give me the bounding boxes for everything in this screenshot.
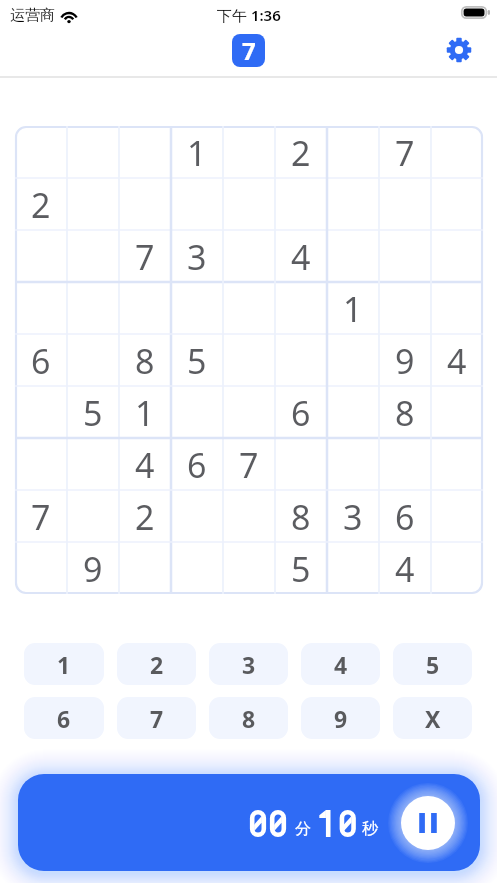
button[interactable] [15, 386, 67, 438]
button[interactable]: Settings [442, 33, 476, 67]
button[interactable]: 8 [275, 490, 327, 542]
button[interactable]: 3 [209, 643, 288, 685]
button[interactable]: 7 [223, 438, 275, 490]
button[interactable]: 5 [393, 643, 472, 685]
button[interactable] [327, 542, 379, 594]
button[interactable]: 5 [67, 386, 119, 438]
button[interactable] [275, 438, 327, 490]
button[interactable]: 8 [209, 697, 288, 739]
staticText: 1 [135, 390, 155, 436]
button[interactable] [223, 230, 275, 282]
button[interactable] [67, 334, 119, 386]
button[interactable]: 9 [379, 334, 431, 386]
button[interactable]: 4 [379, 542, 431, 594]
button[interactable]: 6 [171, 438, 223, 490]
button[interactable] [275, 282, 327, 334]
button[interactable] [431, 542, 483, 594]
button[interactable]: 7 [117, 697, 196, 739]
button[interactable]: 6 [24, 697, 104, 739]
button[interactable] [171, 178, 223, 230]
button[interactable]: 9 [67, 542, 119, 594]
button[interactable] [15, 438, 67, 490]
button[interactable] [223, 490, 275, 542]
button[interactable] [67, 490, 119, 542]
button[interactable] [171, 282, 223, 334]
button[interactable]: 5 [171, 334, 223, 386]
button[interactable] [431, 178, 483, 230]
button[interactable]: 5 [275, 542, 327, 594]
button[interactable] [223, 282, 275, 334]
button[interactable]: Pause [401, 796, 455, 850]
button[interactable] [67, 178, 119, 230]
staticText: 秒 [362, 819, 378, 839]
button[interactable] [171, 490, 223, 542]
button[interactable]: 4 [301, 643, 380, 685]
button[interactable]: 3 [327, 490, 379, 542]
button[interactable]: 2 [117, 643, 196, 685]
button[interactable] [223, 126, 275, 178]
button[interactable] [379, 438, 431, 490]
button[interactable] [431, 230, 483, 282]
button[interactable] [275, 178, 327, 230]
button[interactable]: 7 [119, 230, 171, 282]
button[interactable] [431, 490, 483, 542]
button[interactable] [223, 334, 275, 386]
button[interactable] [67, 126, 119, 178]
button[interactable] [275, 334, 327, 386]
button[interactable]: 9 [301, 697, 380, 739]
button[interactable]: 4 [119, 438, 171, 490]
button[interactable] [15, 126, 67, 178]
button[interactable] [327, 386, 379, 438]
button[interactable] [171, 386, 223, 438]
button[interactable]: 7 [15, 490, 67, 542]
button[interactable]: 1 [119, 386, 171, 438]
button[interactable]: 8 [119, 334, 171, 386]
button[interactable]: 6 [275, 386, 327, 438]
button[interactable]: 1 [24, 643, 104, 685]
button[interactable]: X [393, 697, 472, 739]
button[interactable] [67, 230, 119, 282]
button[interactable] [431, 282, 483, 334]
button[interactable] [223, 178, 275, 230]
button[interactable] [431, 126, 483, 178]
button[interactable] [379, 230, 431, 282]
button[interactable] [223, 542, 275, 594]
button[interactable] [67, 282, 119, 334]
button[interactable]: 7 [379, 126, 431, 178]
button[interactable]: 6 [15, 334, 67, 386]
button[interactable] [379, 282, 431, 334]
button[interactable]: 4 [431, 334, 483, 386]
button[interactable] [119, 282, 171, 334]
button[interactable]: 2 [275, 126, 327, 178]
button[interactable]: 2 [119, 490, 171, 542]
button[interactable]: 1 [171, 126, 223, 178]
button[interactable] [223, 386, 275, 438]
staticText: 6 [291, 390, 311, 436]
button[interactable] [431, 386, 483, 438]
button[interactable]: 1 [327, 282, 379, 334]
button[interactable]: 7 [232, 34, 265, 67]
button[interactable]: 分 [18, 774, 480, 871]
button[interactable] [67, 438, 119, 490]
button[interactable] [379, 178, 431, 230]
button[interactable] [327, 334, 379, 386]
button[interactable] [171, 542, 223, 594]
button[interactable] [119, 126, 171, 178]
button[interactable]: 3 [171, 230, 223, 282]
staticText: 3 [187, 234, 207, 280]
button[interactable] [15, 282, 67, 334]
button[interactable] [327, 438, 379, 490]
button[interactable]: 8 [379, 386, 431, 438]
button[interactable]: 6 [379, 490, 431, 542]
button[interactable]: 4 [275, 230, 327, 282]
button[interactable] [327, 230, 379, 282]
button[interactable] [119, 542, 171, 594]
button[interactable] [327, 178, 379, 230]
button[interactable]: 2 [15, 178, 67, 230]
button[interactable] [327, 126, 379, 178]
button[interactable] [431, 438, 483, 490]
staticText: 2 [150, 649, 164, 680]
button[interactable] [119, 178, 171, 230]
button[interactable] [15, 542, 67, 594]
button[interactable] [15, 230, 67, 282]
